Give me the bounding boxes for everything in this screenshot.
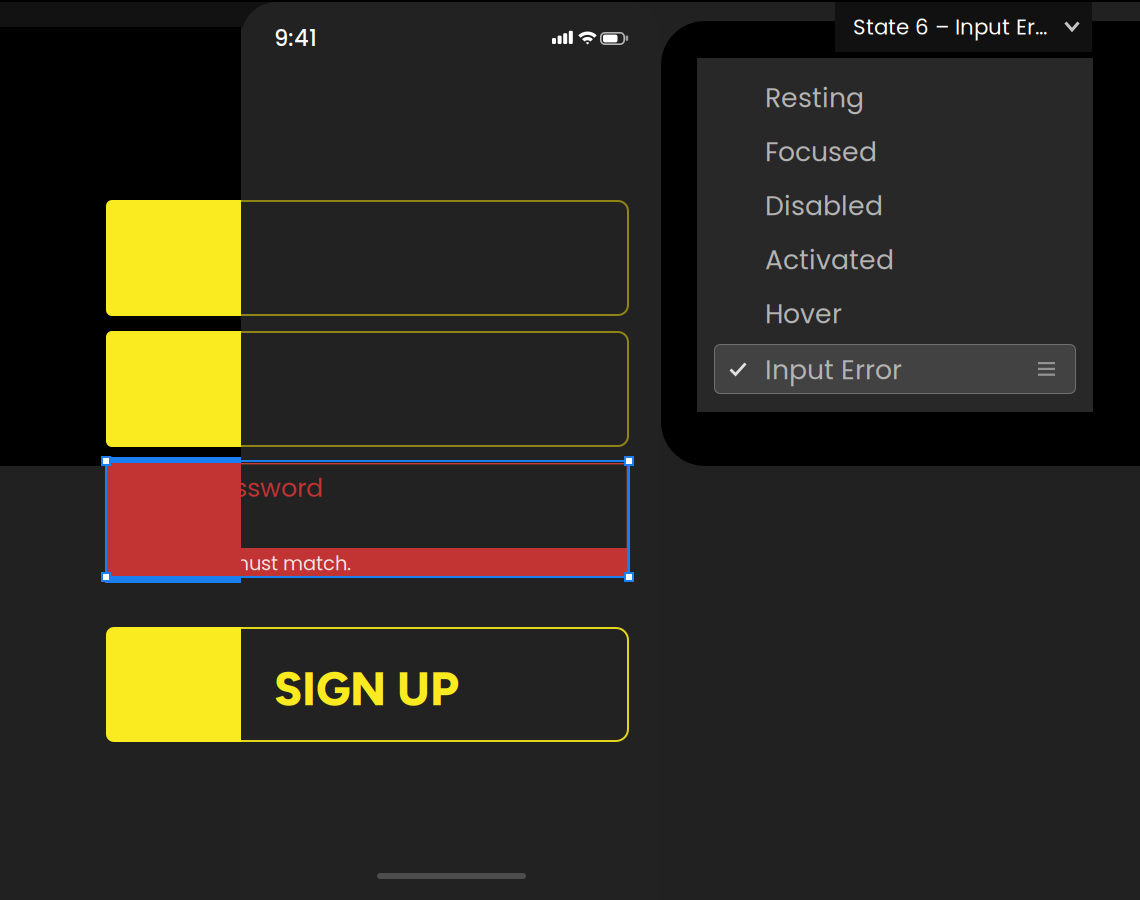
staticText: Activated [765, 241, 894, 279]
staticText: Password [202, 470, 323, 506]
button[interactable]: Activated [714, 235, 1076, 285]
button[interactable]: Password [106, 331, 629, 447]
staticText: SIGN UP [274, 661, 459, 717]
staticText: Passwords must match. [122, 550, 351, 577]
button[interactable]: State 6 – Input Er... [835, 2, 1092, 52]
button[interactable]: Hover [714, 289, 1076, 339]
staticText: Resting [765, 79, 864, 117]
staticText: Input Error [765, 351, 902, 389]
staticText: Focused [765, 133, 877, 171]
staticText: 9:41 [274, 22, 317, 54]
staticText: State 6 – Input Er... [853, 12, 1047, 42]
button[interactable]: Email [106, 200, 629, 316]
button[interactable]: Resting [714, 73, 1076, 123]
button[interactable]: Input Error [714, 344, 1076, 394]
button[interactable]: SIGN UP [106, 627, 629, 742]
button[interactable]: Disabled [714, 181, 1076, 231]
staticText: Hover [765, 295, 842, 333]
button[interactable]: Focused [714, 127, 1076, 177]
staticText: Disabled [765, 187, 883, 225]
